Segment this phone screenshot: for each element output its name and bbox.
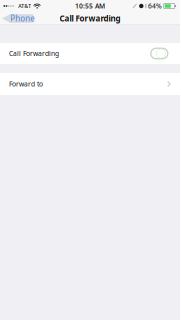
- staticText: Call Forwarding: [59, 13, 120, 24]
- button[interactable]: Call Forwarding: [0, 43, 180, 64]
- staticText: Phone: [10, 13, 35, 24]
- staticText: 10:55 AM: [75, 2, 105, 10]
- staticText: Call Forwarding: [9, 49, 59, 58]
- staticText: 64%: [148, 2, 162, 10]
- staticText: AT&T: [18, 2, 31, 10]
- button[interactable]: Phone: [0, 12, 34, 25]
- staticText: Forward to: [9, 80, 43, 88]
- button[interactable]: Forward to: [0, 73, 180, 95]
